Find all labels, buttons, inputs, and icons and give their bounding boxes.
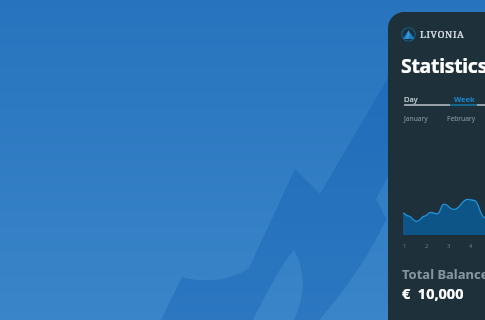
staticText: 2 — [425, 242, 447, 250]
staticText: 4 — [469, 242, 485, 250]
button[interactable]: Day — [404, 94, 454, 104]
staticText: 1 — [403, 242, 425, 250]
button[interactable]: Week — [454, 94, 485, 104]
staticText: Total Balance — [402, 265, 485, 283]
staticText: January — [404, 114, 447, 123]
staticText: Day — [404, 94, 418, 104]
staticText: € 10,000 — [402, 283, 464, 303]
staticText: 3 — [447, 242, 469, 250]
staticText: February — [447, 114, 476, 123]
staticText: Week — [454, 94, 475, 104]
staticText: Statistics — [401, 52, 485, 79]
staticText: LIVONIA — [420, 28, 465, 41]
button[interactable]: Livonia — [401, 27, 465, 42]
